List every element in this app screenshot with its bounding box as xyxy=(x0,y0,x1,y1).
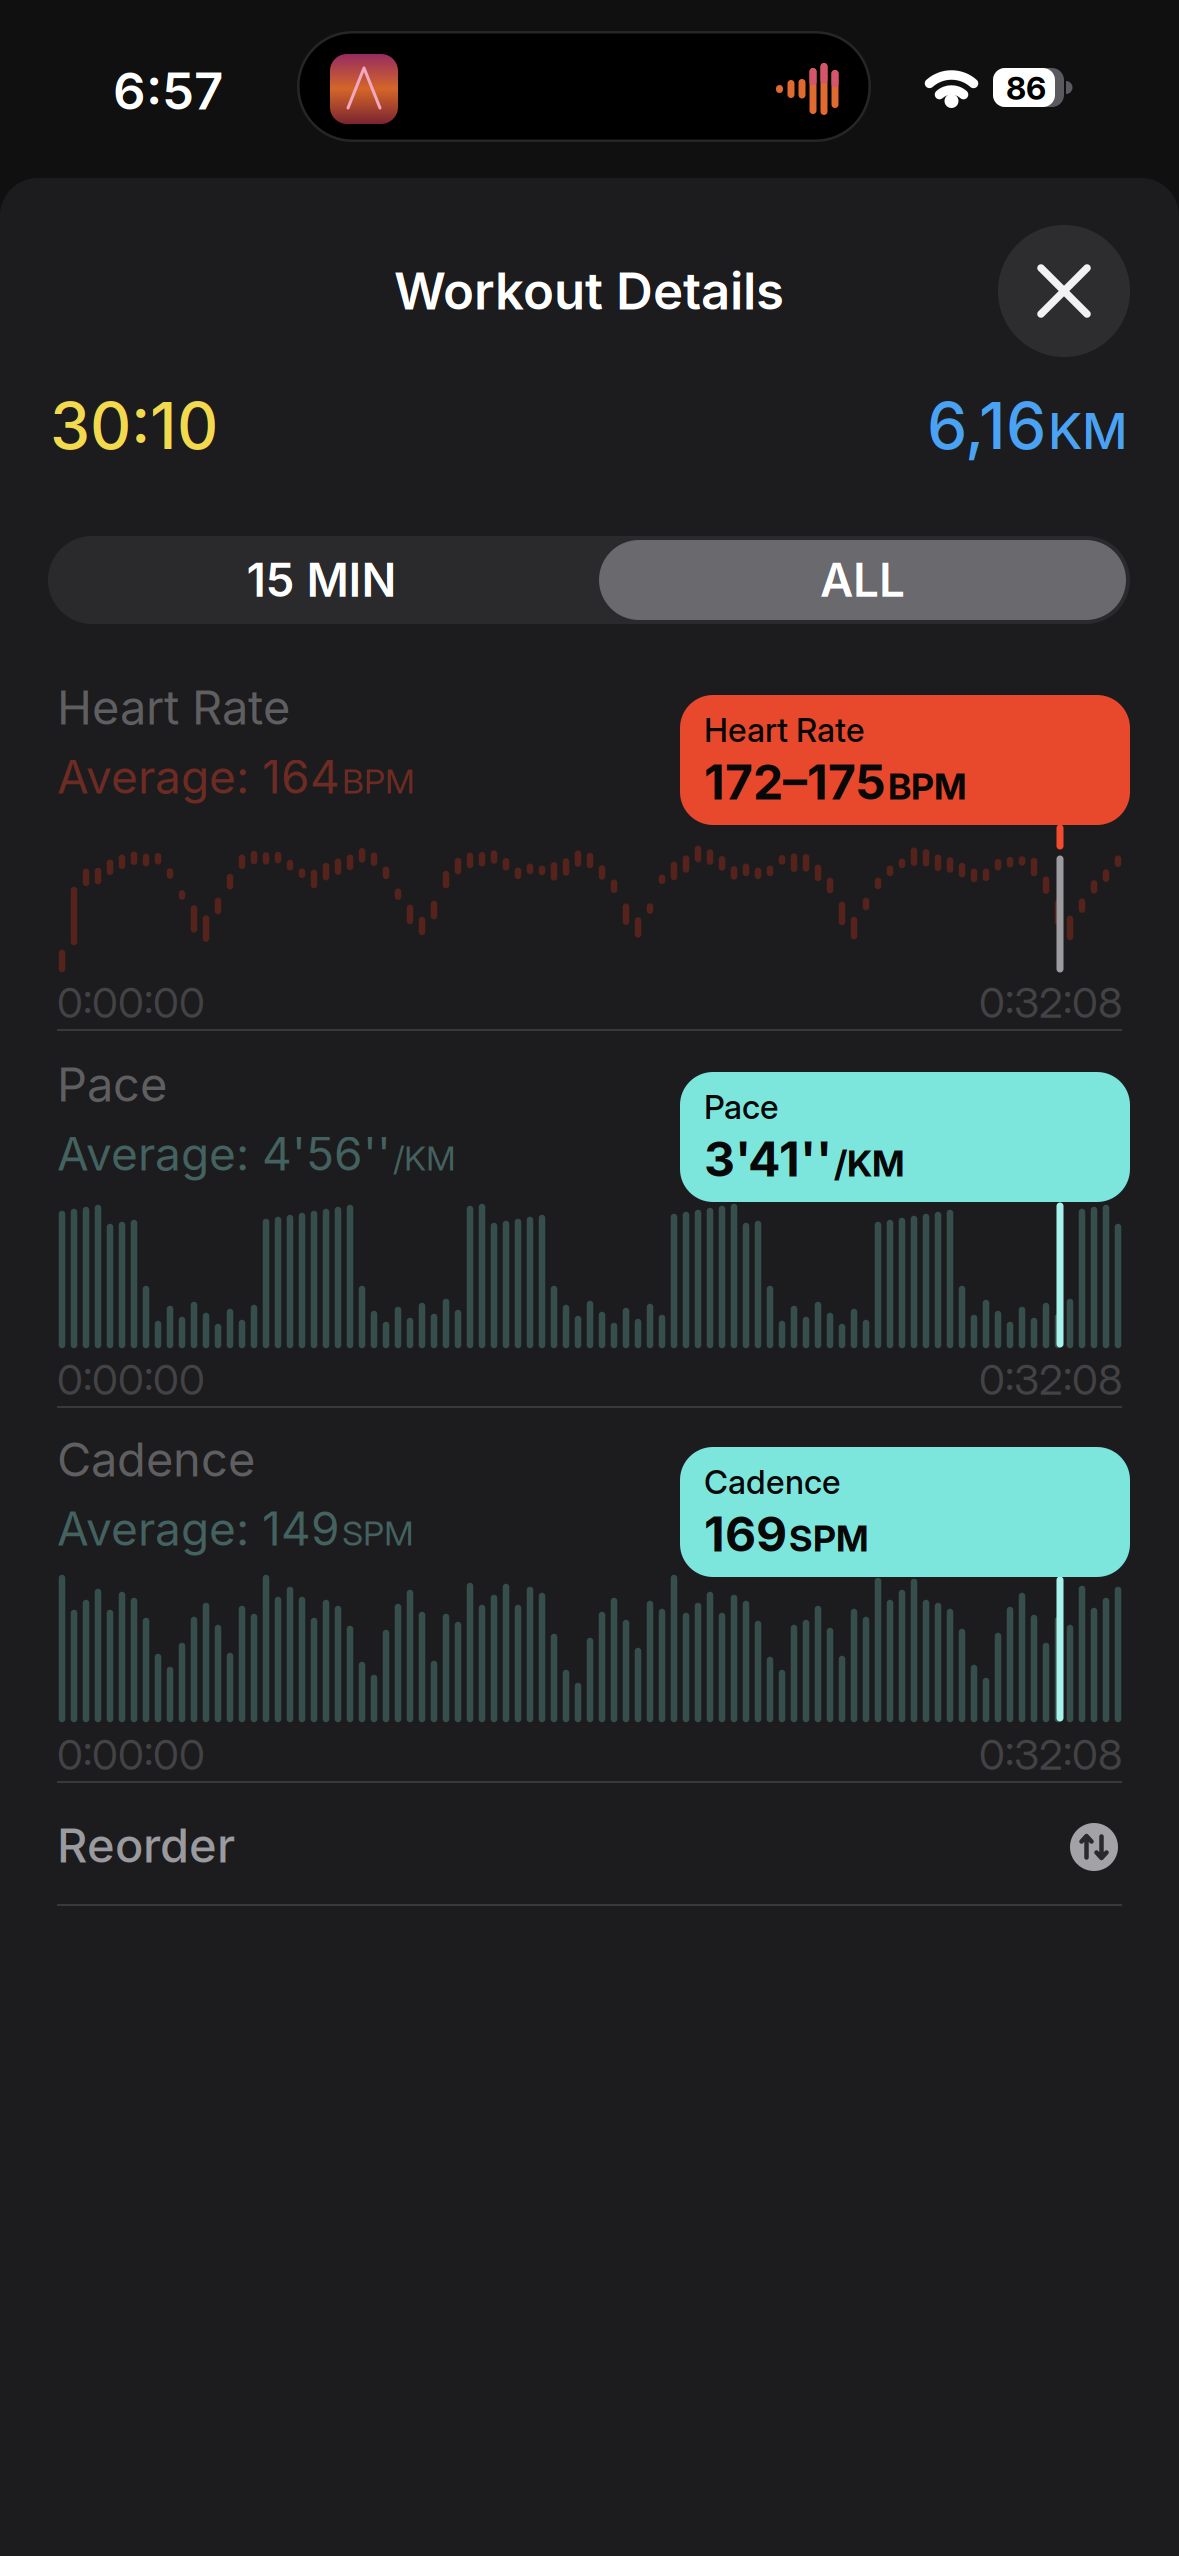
staticText: BPM xyxy=(888,765,967,808)
staticText: 0:32:08 xyxy=(979,977,1122,1028)
staticText: 0:00:00 xyxy=(57,977,205,1028)
staticText: Pace xyxy=(704,1087,779,1127)
staticText: SPM xyxy=(342,1513,414,1554)
staticText: Average: 164 xyxy=(57,749,340,805)
staticText: /KM xyxy=(834,1142,905,1185)
staticText: /KM xyxy=(393,1138,456,1179)
staticText: Workout Details xyxy=(394,260,784,322)
staticText: 0:32:08 xyxy=(979,1729,1122,1780)
staticText: 172–175 xyxy=(704,753,886,811)
staticText: Reorder xyxy=(57,1817,235,1874)
staticText: 30:10 xyxy=(50,387,218,464)
staticText: 0:00:00 xyxy=(57,1354,205,1405)
button[interactable]: Close xyxy=(998,225,1130,357)
staticText: 15 MIN xyxy=(246,552,396,608)
staticText: 6,16 xyxy=(927,387,1046,464)
staticText: ALL xyxy=(820,552,905,608)
button[interactable]: 15 MIN xyxy=(48,536,595,624)
staticText: 6:57 xyxy=(113,60,223,122)
staticText: Heart Rate xyxy=(57,679,290,736)
staticText: Average: 149 xyxy=(57,1501,340,1557)
button[interactable]: ALL xyxy=(599,540,1126,620)
staticText: 86 xyxy=(1006,69,1046,107)
staticText: 0:32:08 xyxy=(979,1354,1122,1405)
staticText: BPM xyxy=(342,761,415,802)
staticText: Cadence xyxy=(57,1431,255,1488)
staticText: Cadence xyxy=(704,1462,841,1502)
staticText: Average: 4'56'' xyxy=(57,1126,391,1182)
staticText: SPM xyxy=(789,1517,869,1560)
button[interactable]: Reorder xyxy=(1070,1823,1118,1871)
staticText: 0:00:00 xyxy=(57,1729,205,1780)
staticText: KM xyxy=(1048,401,1128,461)
staticText: Heart Rate xyxy=(704,710,865,750)
staticText: 3'41'' xyxy=(704,1130,832,1188)
staticText: Pace xyxy=(57,1056,167,1113)
staticText: 169 xyxy=(704,1505,787,1563)
